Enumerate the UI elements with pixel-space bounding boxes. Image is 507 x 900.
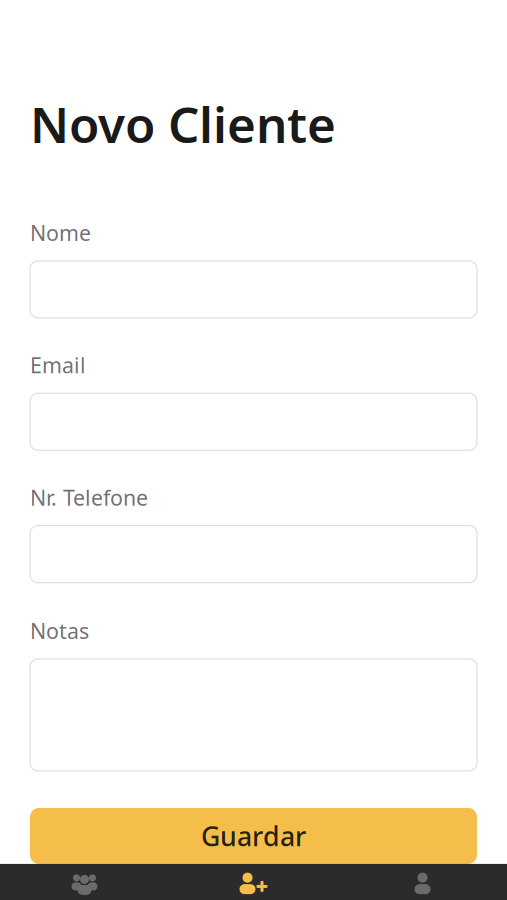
button[interactable]: Nome: [30, 219, 477, 318]
button[interactable]: Notas: [30, 617, 477, 771]
button[interactable]: Email: [30, 351, 477, 450]
button[interactable]: Cliente: [0, 863, 169, 900]
button[interactable]: Nr. Telefone: [30, 483, 477, 583]
staticText: Notas: [30, 617, 89, 645]
staticText: Email: [30, 351, 86, 379]
staticText: Guardar: [201, 818, 306, 854]
staticText: Nr. Telefone: [30, 483, 148, 512]
button[interactable]: Adicionar: [169, 863, 338, 900]
staticText: Novo Cliente: [30, 91, 336, 157]
staticText: Nome: [30, 219, 91, 247]
button[interactable]: Perfil: [338, 863, 507, 900]
button[interactable]: Guardar: [30, 808, 477, 864]
